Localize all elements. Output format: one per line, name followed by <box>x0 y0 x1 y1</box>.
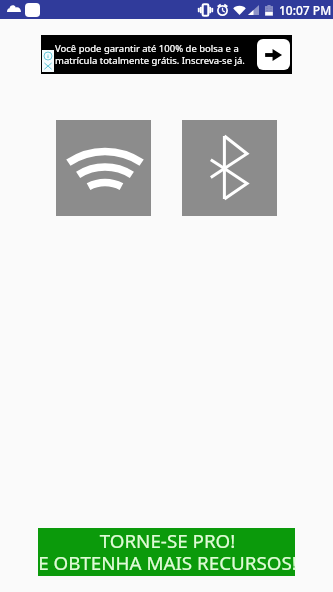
staticText: 10:07 PM <box>279 2 332 18</box>
button[interactable]: TORNE-SE PRO! E OBTENHA MAIS RECURSOS! <box>38 528 295 576</box>
button[interactable]: Bluetooth <box>182 120 277 216</box>
staticText: TORNE-SE PRO! E OBTENHA MAIS RECURSOS! <box>38 528 297 575</box>
button[interactable]: Você pode garantir até 100% de bolsa e a… <box>41 35 292 74</box>
button[interactable]: Wi-Fi <box>56 120 151 216</box>
button[interactable]: Open ad <box>257 39 290 70</box>
staticText: Você pode garantir até 100% de bolsa e a… <box>55 42 245 67</box>
